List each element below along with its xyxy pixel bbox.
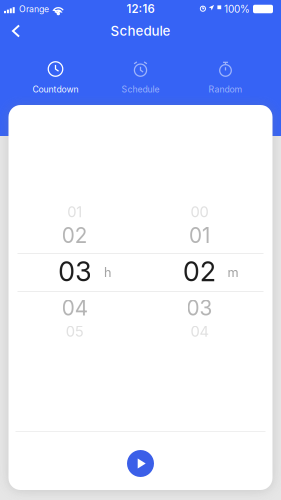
staticText: 03	[186, 295, 212, 320]
staticText: m	[227, 265, 238, 280]
button[interactable]: Countdown	[13, 44, 98, 100]
staticText: 02	[183, 255, 216, 288]
staticText: 01	[189, 223, 210, 248]
staticText: Orange	[19, 4, 49, 14]
staticText: 12:16	[126, 2, 154, 16]
button[interactable]: Back	[0, 18, 32, 44]
staticText: Random	[208, 84, 242, 94]
staticText: 05	[66, 323, 84, 340]
staticText: Countdown	[32, 84, 78, 94]
staticText: 01	[67, 203, 82, 221]
staticText: 04	[62, 295, 88, 320]
staticText: h	[104, 265, 111, 280]
staticText: Schedule	[110, 23, 170, 39]
staticText: 00	[190, 203, 208, 221]
button[interactable]: Random	[183, 44, 268, 100]
button[interactable]: Schedule	[98, 44, 183, 100]
staticText: 100%	[224, 3, 250, 15]
staticText: Schedule	[121, 84, 159, 94]
staticText: 03	[58, 255, 91, 288]
staticText: 04	[190, 323, 208, 340]
button[interactable]: Start	[118, 448, 162, 479]
staticText: 02	[62, 223, 88, 248]
